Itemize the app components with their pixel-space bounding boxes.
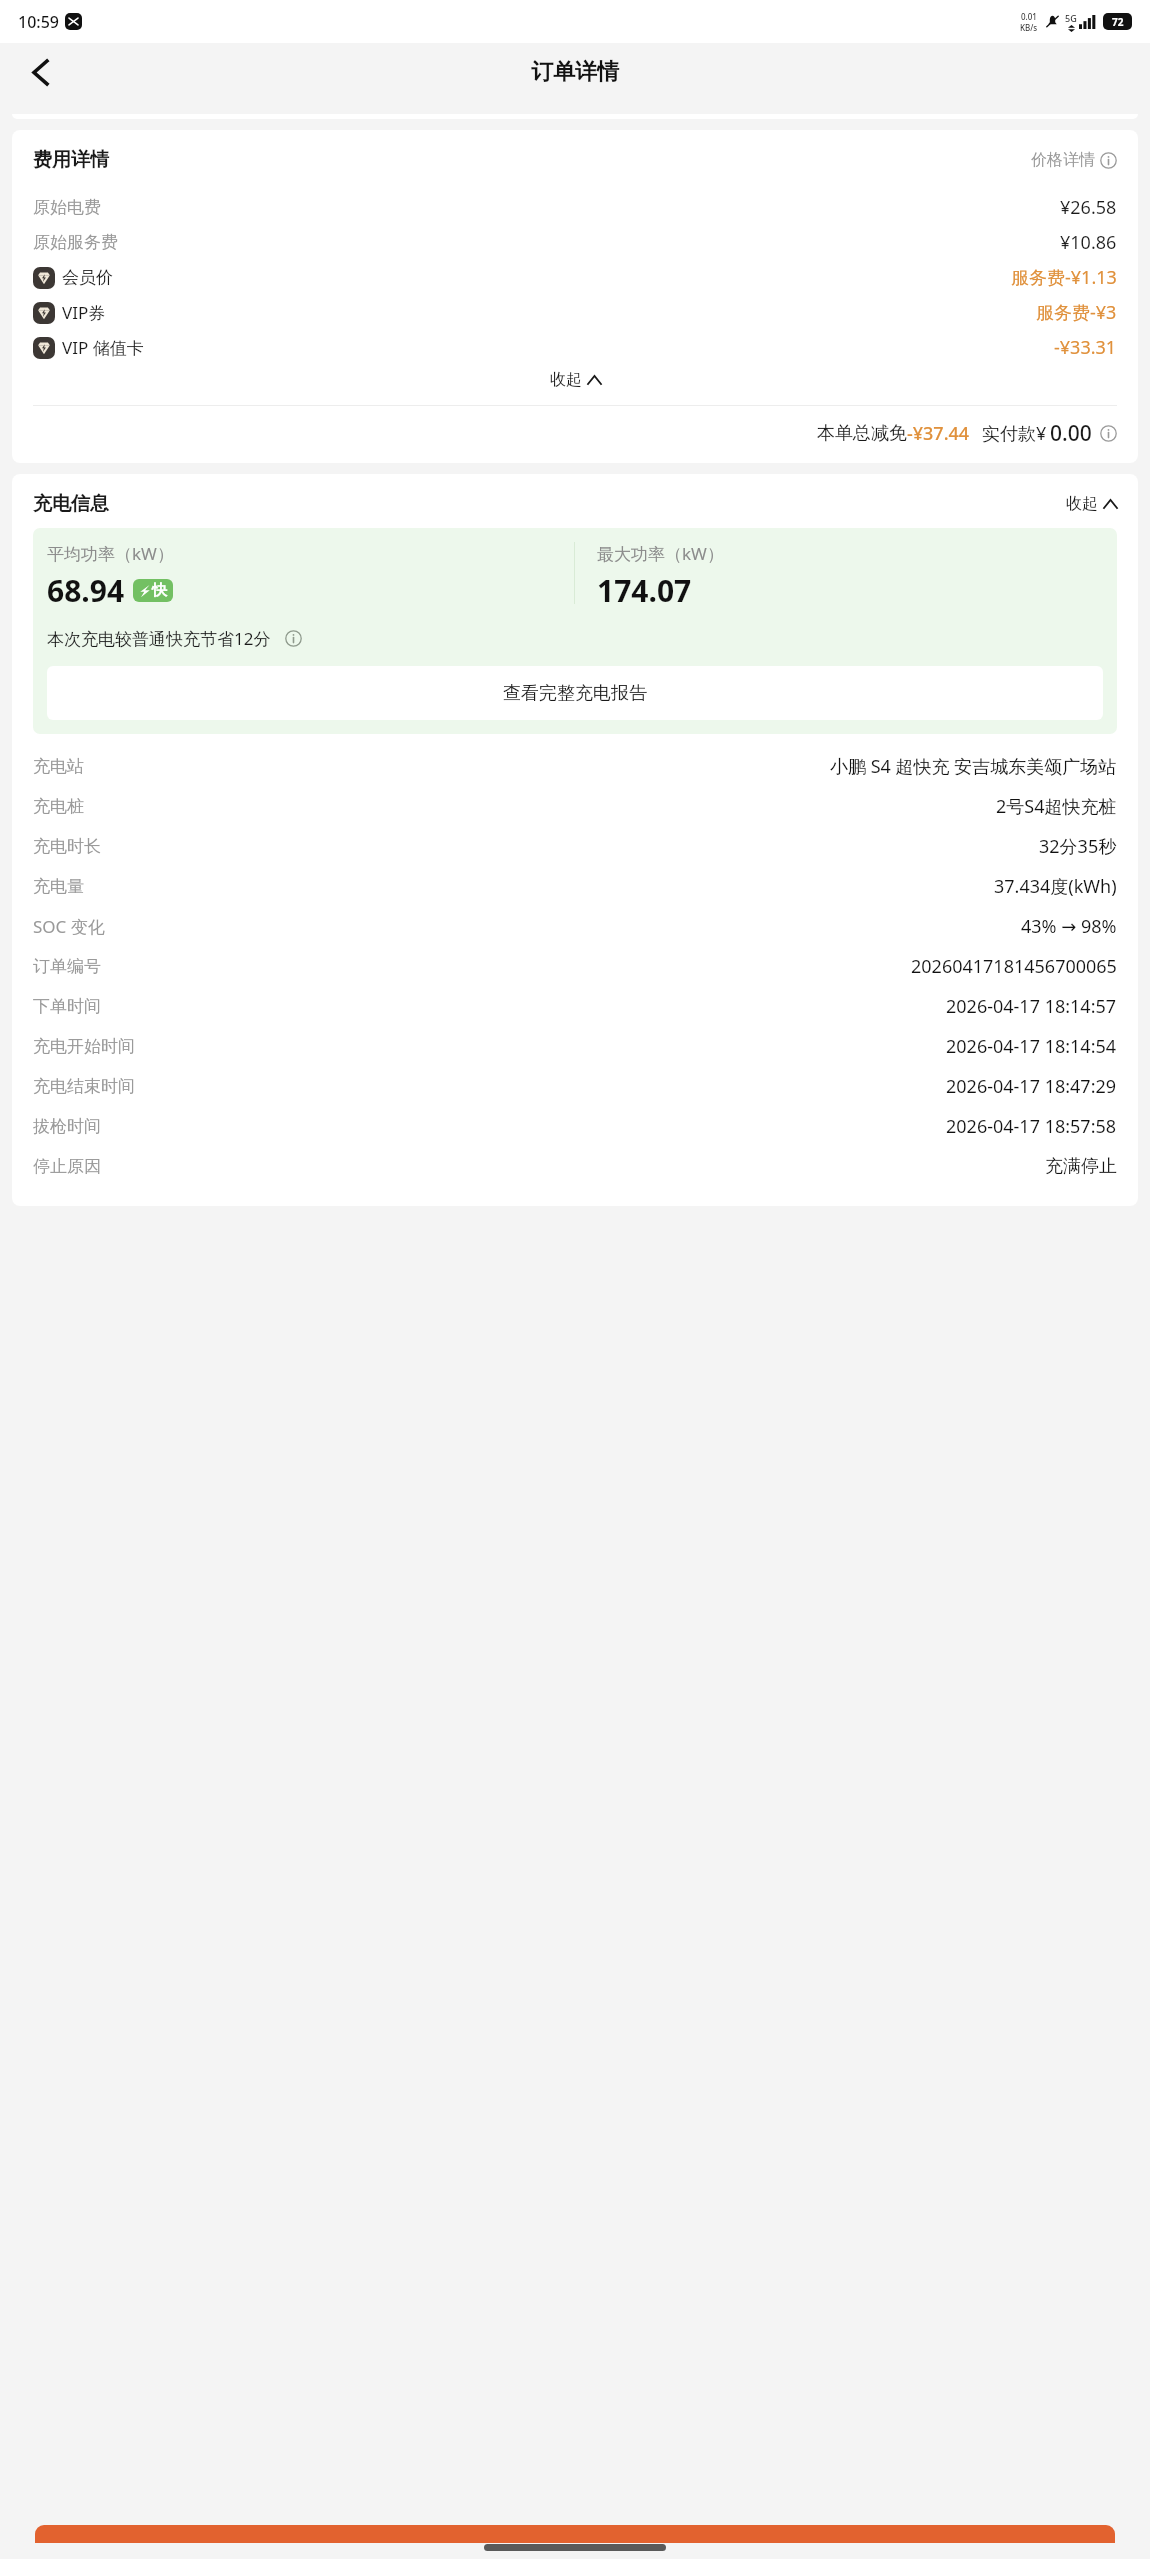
- button[interactable]: VIP券: [33, 295, 1117, 330]
- staticText: 收起: [1066, 494, 1098, 514]
- button[interactable]: VIP 储值卡: [33, 330, 1117, 365]
- staticText: 充电结束时间: [33, 1076, 135, 1097]
- staticText: 2026-04-17 18:14:57: [946, 994, 1117, 1019]
- staticText: 0.00: [1050, 419, 1092, 448]
- button[interactable]: 查看完整充电报告: [47, 666, 1103, 720]
- staticText: 价格详情: [1031, 150, 1095, 170]
- staticText: 充电信息: [33, 492, 109, 516]
- staticText: -¥37.44: [907, 421, 970, 446]
- staticText: 会员价: [62, 267, 113, 288]
- staticText: 68.94: [47, 570, 125, 611]
- button[interactable]: 收起: [1066, 494, 1117, 514]
- staticText: 20260417181456700065: [911, 954, 1117, 979]
- staticText: 下单时间: [33, 996, 101, 1017]
- staticText: 充电量: [33, 876, 84, 897]
- staticText: 最大功率（kW）: [597, 542, 724, 565]
- staticText: 2026-04-17 18:57:58: [946, 1114, 1117, 1139]
- staticText: 本单总减免: [817, 422, 907, 445]
- staticText: 原始电费: [33, 197, 101, 218]
- staticText: 订单编号: [33, 956, 101, 977]
- staticText: VIP 储值卡: [62, 336, 144, 359]
- staticText: KB/s: [1020, 22, 1038, 33]
- staticText: ¥10.86: [1060, 230, 1117, 255]
- staticText: 订单详情: [531, 58, 619, 86]
- staticText: VIP券: [62, 301, 106, 324]
- staticText: 服务费-¥1.13: [1011, 265, 1117, 290]
- staticText: SOC 变化: [33, 915, 105, 938]
- staticText: 2号S4超快充桩: [996, 794, 1117, 819]
- staticText: 32分35秒: [1039, 834, 1117, 859]
- button[interactable]: [35, 2525, 1115, 2543]
- button[interactable]: 收起: [33, 370, 1117, 390]
- staticText: 服务费-¥3: [1036, 300, 1117, 325]
- staticText: 72: [1112, 15, 1124, 29]
- staticText: 174.07: [597, 570, 692, 611]
- staticText: 平均功率（kW）: [47, 542, 174, 565]
- staticText: 43% → 98%: [1021, 914, 1117, 939]
- staticText: 费用详情: [33, 148, 109, 172]
- staticText: 充电站: [33, 756, 84, 777]
- staticText: 2026-04-17 18:14:54: [946, 1034, 1117, 1059]
- staticText: 收起: [550, 370, 582, 390]
- staticText: 停止原因: [33, 1156, 101, 1177]
- staticText: 充电时长: [33, 836, 101, 857]
- staticText: 37.434度(kWh): [994, 874, 1117, 899]
- staticText: 充满停止: [1045, 1155, 1117, 1178]
- button[interactable]: 会员价: [33, 260, 1117, 295]
- staticText: ¥26.58: [1060, 195, 1117, 220]
- staticText: 快: [152, 581, 167, 600]
- staticText: 充电桩: [33, 796, 84, 817]
- staticText: 实付款¥: [982, 421, 1047, 446]
- button[interactable]: 价格详情: [1031, 150, 1117, 170]
- staticText: 本次充电较普通快充节省12分: [47, 627, 271, 650]
- staticText: 充电开始时间: [33, 1036, 135, 1057]
- staticText: -¥33.31: [1054, 335, 1117, 360]
- staticText: 原始服务费: [33, 232, 118, 253]
- staticText: 2026-04-17 18:47:29: [946, 1074, 1117, 1099]
- button[interactable]: Back: [18, 50, 62, 94]
- staticText: 5G: [1065, 12, 1077, 24]
- staticText: 查看完整充电报告: [503, 682, 647, 705]
- staticText: 小鹏 S4 超快充 安吉城东美颂广场站: [830, 754, 1117, 779]
- staticText: 10:59: [18, 11, 59, 33]
- staticText: 0.01: [1021, 11, 1037, 22]
- staticText: 拔枪时间: [33, 1116, 101, 1137]
